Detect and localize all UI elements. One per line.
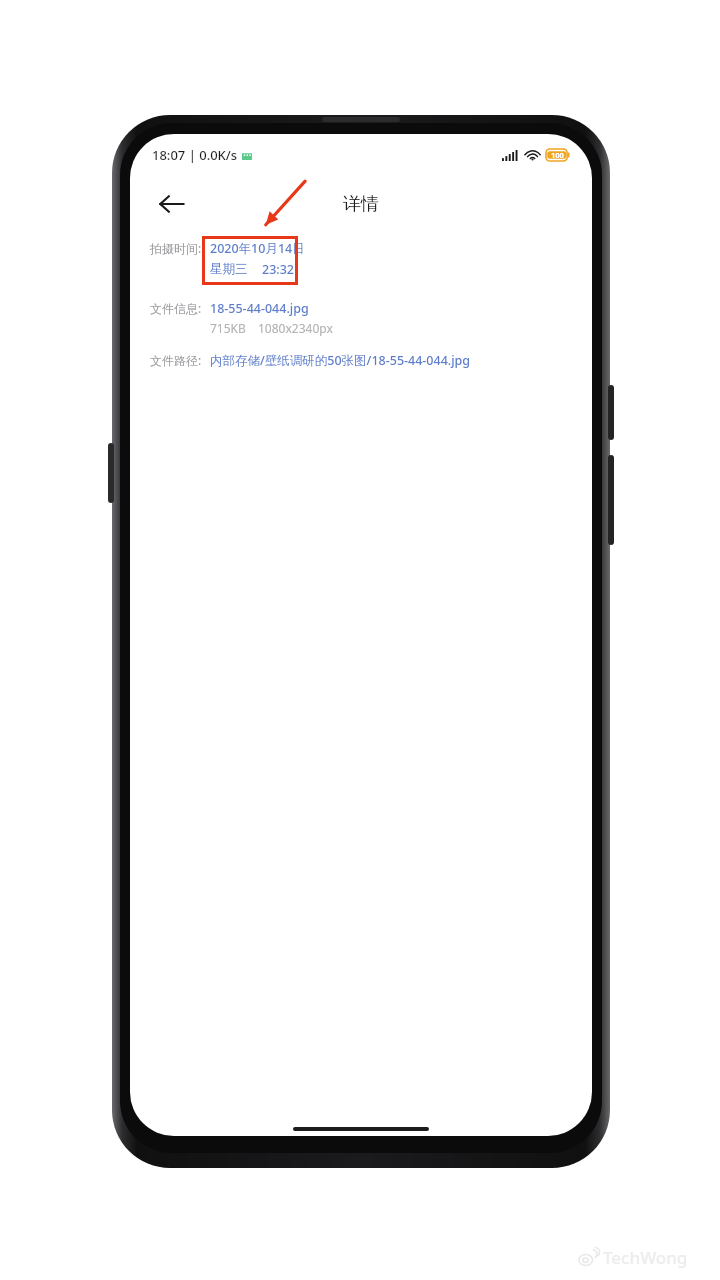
staticText: 2020年10月14日 — [210, 240, 305, 257]
staticText: 1080x2340px — [258, 320, 333, 336]
staticText: 文件路径: — [150, 352, 202, 368]
staticText: 715KB — [210, 320, 246, 336]
staticText: 18-55-44-044.jpg — [210, 300, 309, 317]
staticText: 100 — [551, 150, 564, 160]
button[interactable]: 文件信息: — [130, 300, 592, 336]
staticText: 内部存储/壁纸调研的50张图/18-55-44-044.jpg — [210, 352, 471, 369]
button[interactable]: Back — [144, 176, 200, 232]
button[interactable]: 文件路径: — [130, 352, 592, 369]
staticText: 23:32 — [262, 261, 295, 278]
staticText: 详情 — [343, 193, 379, 216]
button[interactable]: 拍摄时间: — [130, 240, 592, 278]
staticText: TechWong — [603, 1246, 688, 1269]
staticText: 文件信息: — [150, 300, 202, 316]
staticText: 星期三 — [210, 261, 248, 277]
staticText: 18:07 | 0.0K/s — [152, 146, 238, 164]
staticText: 拍摄时间: — [150, 240, 202, 256]
